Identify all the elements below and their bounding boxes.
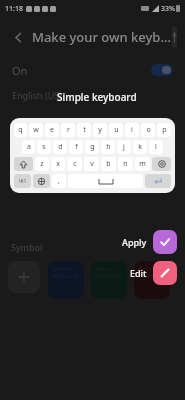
staticText: z [40,159,44,169]
button[interactable]: t [77,123,91,137]
button[interactable]: a [22,140,35,154]
staticText: j [123,142,125,152]
button[interactable]: Key [33,174,50,188]
staticText: s [42,142,46,152]
staticText: b [106,159,111,169]
button[interactable]: c [67,157,82,171]
staticText: 33% [161,4,175,14]
button[interactable]: Key [14,174,31,188]
button[interactable]: f [69,140,83,154]
button[interactable]: d [53,140,67,154]
button[interactable]: r [61,123,75,137]
button[interactable]: o [141,123,155,137]
staticText: !#1 [19,178,27,185]
staticText: e [50,125,54,135]
staticText: g [90,142,95,152]
staticText: i [131,125,133,135]
button[interactable]: n [118,157,133,171]
button[interactable] [68,174,143,188]
staticText: d [58,142,63,152]
staticText: a [27,142,31,152]
button[interactable]: u [109,123,123,137]
button[interactable]: l [149,140,163,154]
staticText: m [139,159,146,169]
staticText: Simple keyboard [57,90,137,104]
button[interactable]: v [84,157,99,171]
button[interactable]: m [135,157,150,171]
staticText: u [114,125,119,135]
staticText: c [73,159,77,169]
staticText: o [146,125,151,135]
staticText: y [98,125,102,135]
staticText: Gaming keyboard [138,265,165,280]
button[interactable]: Back [8,17,177,57]
staticText: On [12,63,28,78]
button[interactable]: b [101,157,116,171]
button[interactable]: Enter [145,174,171,188]
button[interactable]: , [52,174,66,188]
staticText: Simple keyboard [52,265,79,280]
button[interactable]: Back [8,27,28,47]
button[interactable]: Edit [130,261,177,285]
staticText: Edit [130,267,147,279]
staticText: r [67,125,70,135]
staticText: q [18,125,23,135]
button[interactable]: i [125,123,139,137]
staticText: Symbol [11,241,43,253]
button[interactable]: s [37,140,51,154]
button[interactable]: j [117,140,131,154]
button[interactable]: Apply [122,230,177,254]
staticText: l [155,142,157,152]
staticText: 11:18 [5,4,23,14]
button[interactable]: z [35,157,49,171]
staticText: , [58,176,60,186]
staticText: v [90,159,94,169]
staticText: x [56,159,60,169]
button[interactable]: p [157,123,171,137]
staticText: Make your own keyb... [32,28,172,46]
staticText: p [162,125,167,135]
staticText: w [33,125,39,135]
button[interactable]: On [12,57,173,83]
button[interactable]: q [14,123,27,137]
button[interactable]: y [93,123,107,137]
button[interactable]: x [51,157,65,171]
staticText: k [138,142,142,152]
staticText: t [83,125,86,135]
staticText: f [75,142,78,152]
staticText: n [123,159,128,169]
staticText: English (US) [12,89,62,101]
button[interactable]: e [45,123,59,137]
button[interactable]: w [29,123,43,137]
button[interactable]: h [101,140,115,154]
button[interactable]: g [85,140,99,154]
staticText: h [106,142,111,152]
button[interactable]: Gaming keyboard [138,265,166,295]
button[interactable]: Key [152,157,171,171]
button[interactable]: Share [172,26,177,48]
button[interactable]: Key [14,157,33,171]
button[interactable] [8,261,40,293]
staticText: Apply [122,236,147,248]
button[interactable]: k [133,140,147,154]
button[interactable]: Simple keyboard [52,265,80,295]
